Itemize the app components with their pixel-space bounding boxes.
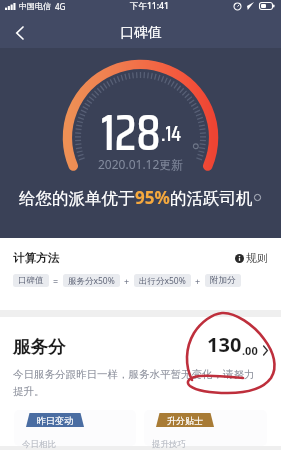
staticText: 计算方法 bbox=[13, 251, 59, 265]
staticText: .00 bbox=[242, 343, 258, 358]
staticText: 昨日变动 bbox=[37, 415, 73, 426]
staticText: 4G bbox=[55, 1, 66, 12]
staticText: + bbox=[195, 275, 201, 287]
staticText: 口碑值 bbox=[18, 275, 44, 286]
button[interactable]: 升分贴士 bbox=[144, 410, 267, 446]
button[interactable]: 说明 bbox=[253, 193, 262, 202]
staticText: 128 bbox=[101, 94, 161, 171]
staticText: 服务分x50% bbox=[68, 275, 115, 287]
staticText: 下午11:41 bbox=[130, 0, 169, 12]
staticText: 出行分x50% bbox=[139, 275, 186, 287]
staticText: + bbox=[124, 275, 130, 287]
staticText: 服务分 bbox=[13, 336, 66, 358]
staticText: 规则 bbox=[246, 251, 268, 265]
staticText: 口碑值 bbox=[120, 24, 162, 42]
button[interactable]: 规则 bbox=[235, 251, 268, 265]
staticText: .14 bbox=[161, 117, 182, 150]
button[interactable]: 服务分 bbox=[13, 331, 268, 358]
staticText: 中国电信 bbox=[19, 1, 51, 11]
button[interactable]: Back bbox=[6, 20, 32, 46]
staticText: 今日相比 bbox=[22, 439, 56, 450]
staticText: 的活跃司机 bbox=[170, 188, 253, 209]
staticText: 2020.01.12更新 bbox=[98, 156, 184, 172]
staticText: 今日服务分跟昨日一样，服务水平暂无变化，请努力提升。 bbox=[13, 368, 264, 398]
staticText: 升分贴士 bbox=[167, 415, 203, 426]
staticText: 130 bbox=[207, 331, 242, 358]
staticText: 95% bbox=[135, 186, 170, 209]
staticText: 附加分 bbox=[210, 275, 236, 286]
staticText: 提升技巧 bbox=[152, 439, 186, 450]
staticText: = bbox=[53, 275, 59, 287]
staticText: 给您的派单优于 bbox=[19, 188, 135, 209]
button[interactable]: 昨日变动 bbox=[14, 410, 136, 446]
